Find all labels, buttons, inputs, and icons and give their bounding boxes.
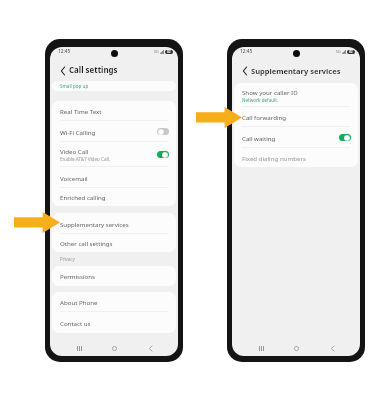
button[interactable]: Show your caller ID xyxy=(234,83,358,107)
staticText: Supplementary services xyxy=(251,66,341,76)
button[interactable]: Real Time Text xyxy=(52,101,176,121)
button[interactable]: Recents xyxy=(72,341,86,355)
button[interactable]: Call forwarding xyxy=(234,107,358,127)
staticText: Call waiting xyxy=(242,134,276,142)
staticText: Permissions xyxy=(60,272,95,280)
staticText: Enable AT&T Video Call. xyxy=(60,156,111,162)
button[interactable]: Wi-Fi Calling xyxy=(52,121,176,142)
button[interactable]: Recents xyxy=(254,341,268,355)
button[interactable]: Toggle xyxy=(157,128,169,135)
staticText: Video Call xyxy=(60,147,89,155)
button[interactable]: Home xyxy=(289,341,303,355)
staticText: Wi-Fi Calling xyxy=(60,128,96,136)
staticText: Contact us xyxy=(60,319,91,327)
staticText: Enriched calling xyxy=(60,193,106,201)
staticText: 5G xyxy=(336,49,341,54)
button[interactable]: Back xyxy=(325,341,339,355)
staticText: Fixed dialing numbers xyxy=(242,154,306,162)
button[interactable]: Toggle xyxy=(339,134,351,141)
button[interactable]: Call waiting xyxy=(234,127,358,148)
button[interactable]: Fixed dialing numbers xyxy=(234,148,358,167)
button[interactable]: Other call settings xyxy=(52,234,176,252)
staticText: 12:45 xyxy=(58,48,71,55)
button[interactable]: Back xyxy=(58,66,68,76)
staticText: Small pop up xyxy=(60,83,89,89)
staticText: 5G xyxy=(154,49,159,54)
button[interactable]: Back xyxy=(240,66,250,76)
button[interactable]: Voicemail xyxy=(52,167,176,188)
button[interactable]: Toggle xyxy=(157,151,169,158)
staticText: Supplementary services xyxy=(60,220,129,228)
button[interactable]: Permissions xyxy=(52,266,176,286)
staticText: Show your caller ID xyxy=(242,88,298,96)
button[interactable]: About Phone xyxy=(52,292,176,312)
button[interactable]: Supplementary services xyxy=(52,213,176,234)
staticText: Call settings xyxy=(69,65,118,76)
staticText: About Phone xyxy=(60,298,98,306)
staticText: Network default. xyxy=(242,97,279,103)
staticText: 12:45 xyxy=(240,48,253,55)
staticText: Voicemail xyxy=(60,174,88,182)
button[interactable]: Video Call xyxy=(52,142,176,167)
button[interactable]: Back xyxy=(143,341,157,355)
button[interactable]: Home xyxy=(107,341,121,355)
staticText: Privacy xyxy=(60,256,75,262)
button[interactable]: Enriched calling xyxy=(52,188,176,206)
staticText: 82 xyxy=(167,50,171,54)
staticText: Other call settings xyxy=(60,239,113,247)
staticText: Call forwarding xyxy=(242,113,287,121)
staticText: Real Time Text xyxy=(60,107,102,115)
button[interactable]: Contact us xyxy=(52,312,176,333)
staticText: 82 xyxy=(349,50,353,54)
